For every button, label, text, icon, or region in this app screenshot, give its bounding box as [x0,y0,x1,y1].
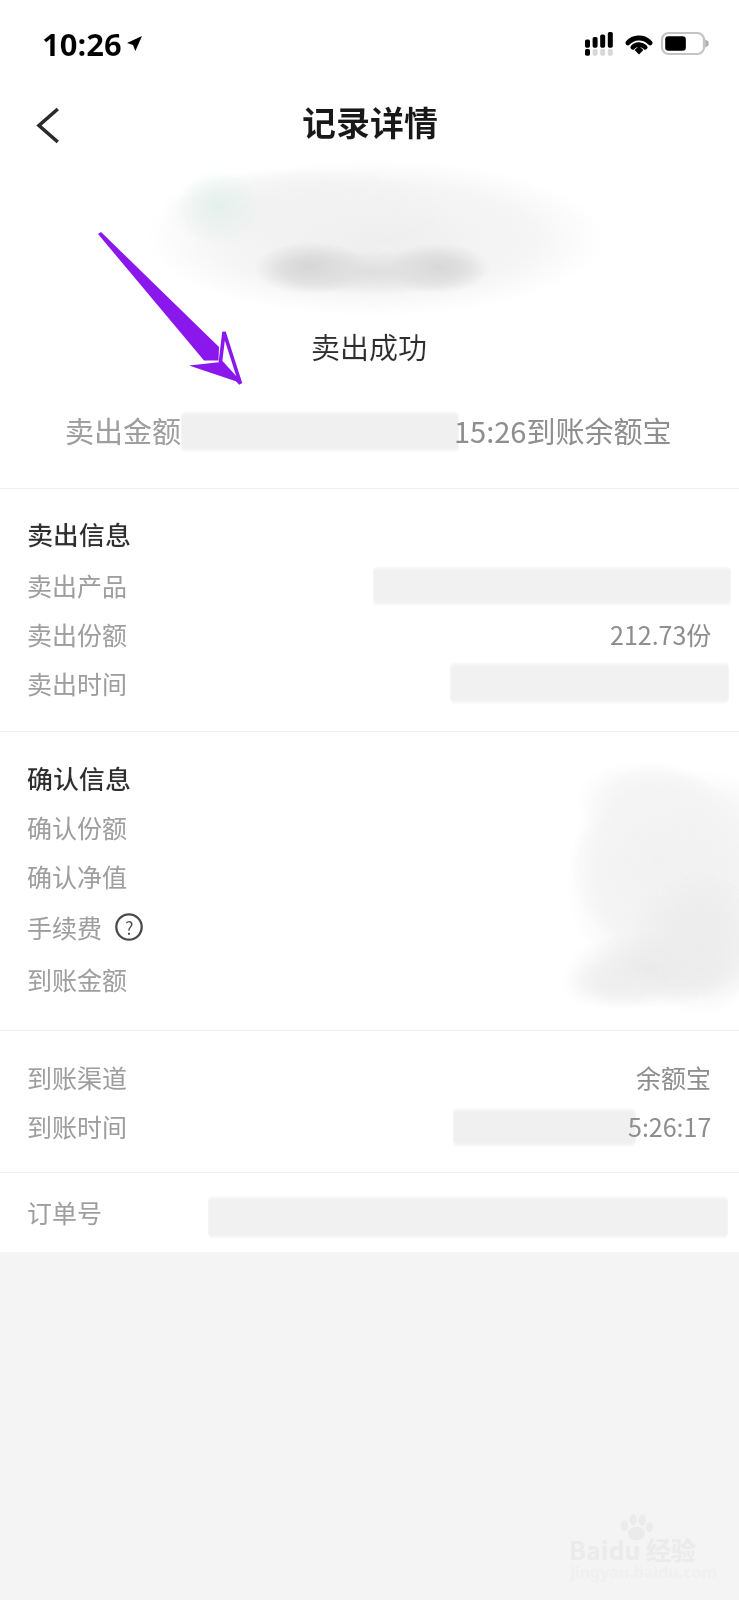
staticText: 确认信息 [27,759,132,797]
staticText: 余额宝 [636,1059,712,1095]
button[interactable]: 卖出份额 [0,609,739,659]
staticText: 确认净值 [27,858,128,894]
staticText: 10:26 [42,23,122,65]
button[interactable]: 卖出产品 [0,560,739,610]
staticText: 卖出信息 [27,515,132,553]
button[interactable]: 到账金额 [0,954,739,1004]
button[interactable]: Back [11,87,87,163]
staticText: Baidu 经验 [569,1531,697,1567]
button[interactable]: 到账渠道 [0,1052,739,1102]
staticText: 5:26:17 [628,1108,712,1144]
button[interactable]: 订单号 [0,1187,739,1237]
staticText: 卖出金额 [65,409,182,451]
staticText: ? [125,914,134,940]
button[interactable]: 确认份额 [0,802,739,852]
staticText: 订单号 [27,1194,103,1230]
button[interactable]: 卖出时间 [0,658,739,708]
staticText: 到账渠道 [27,1059,128,1095]
button[interactable]: 确认净值 [0,851,739,901]
staticText: 卖出产品 [27,567,128,603]
staticText: 手续费 [27,909,103,945]
staticText: 记录详情 [302,97,438,146]
staticText: 212.73份 [610,616,712,652]
staticText: 确认份额 [27,809,128,845]
button[interactable]: 卖出金额 [65,405,672,455]
staticText: 到账时间 [27,1108,128,1144]
staticText: 卖出成功 [311,325,428,367]
staticText: 卖出时间 [27,665,128,701]
staticText: 卖出份额 [27,616,128,652]
staticText: 15:26到账余额宝 [454,409,672,451]
button[interactable]: 手续费 [27,902,739,952]
button[interactable]: 到账时间 [0,1101,739,1151]
staticText: 到账金额 [27,961,128,997]
